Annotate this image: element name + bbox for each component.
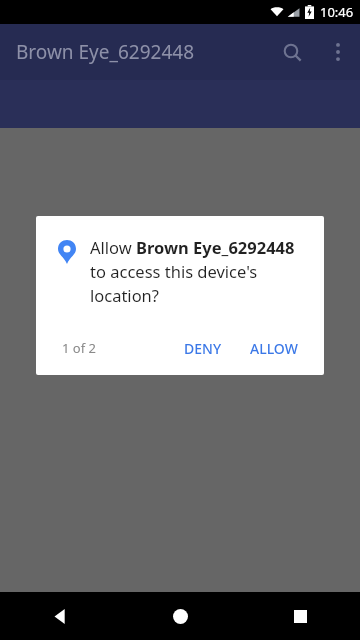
button[interactable]: Search (268, 28, 316, 76)
staticText: DENY (184, 339, 222, 358)
staticText: Brown Eye_6292448 (16, 39, 195, 65)
button[interactable]: ALLOW (238, 331, 310, 366)
staticText: ALLOW (250, 339, 298, 358)
staticText: 1 of 2 (62, 339, 96, 357)
button[interactable]: Back (0, 592, 120, 640)
button[interactable]: DENY (172, 331, 234, 366)
staticText: 10:46 (320, 3, 354, 21)
button[interactable]: More options (316, 30, 360, 74)
button[interactable]: Home (120, 592, 240, 640)
button[interactable]: Recent apps (240, 592, 360, 640)
staticText: Allow Brown Eye_6292448 to access this d… (90, 236, 306, 307)
